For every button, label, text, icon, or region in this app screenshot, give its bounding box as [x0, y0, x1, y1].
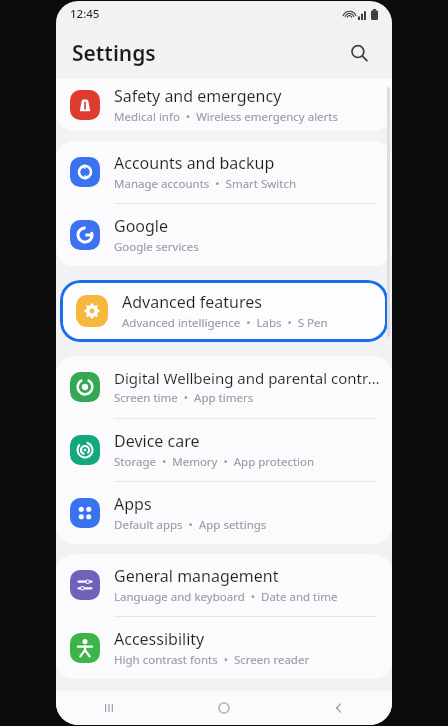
- staticText: Accessibility: [114, 628, 205, 650]
- staticText: Device care: [114, 430, 200, 452]
- staticText: Google services: [114, 239, 199, 255]
- staticText: Advanced features: [122, 291, 262, 313]
- staticText: 12:45: [70, 6, 100, 22]
- staticText: High contrast fonts • Screen reader: [114, 652, 310, 668]
- button[interactable]: Accessibility: [56, 617, 392, 679]
- button[interactable]: Back: [320, 691, 358, 725]
- staticText: General management: [114, 565, 279, 587]
- button[interactable]: Accounts and backup: [56, 141, 392, 203]
- staticText: Digital Wellbeing and parental controls: [114, 368, 380, 388]
- staticText: Apps: [114, 493, 152, 515]
- button[interactable]: Advanced features: [60, 280, 388, 342]
- staticText: Screen time • App timers: [114, 390, 254, 406]
- staticText: Language and keyboard • Date and time: [114, 589, 338, 605]
- staticText: Settings: [72, 39, 156, 68]
- staticText: Manage accounts • Smart Switch: [114, 176, 297, 192]
- staticText: Storage • Memory • App protection: [114, 454, 315, 470]
- button[interactable]: Device care: [56, 419, 392, 481]
- button[interactable]: General management: [56, 554, 392, 616]
- staticText: Google: [114, 215, 169, 237]
- staticText: Advanced intelligence • Labs • S Pen: [122, 315, 328, 331]
- staticText: Safety and emergency: [114, 85, 282, 107]
- staticText: Default apps • App settings: [114, 517, 267, 533]
- staticText: Medical info • Wireless emergency alerts: [114, 109, 338, 125]
- button[interactable]: Safety and emergency: [56, 79, 392, 131]
- button[interactable]: Recent apps: [90, 691, 128, 725]
- button[interactable]: Apps: [56, 482, 392, 544]
- button[interactable]: Search: [342, 36, 376, 70]
- staticText: Accounts and backup: [114, 152, 275, 174]
- button[interactable]: Digital Wellbeing and parental controls: [56, 356, 392, 418]
- button[interactable]: Google: [56, 204, 392, 266]
- button[interactable]: Home: [205, 691, 243, 725]
